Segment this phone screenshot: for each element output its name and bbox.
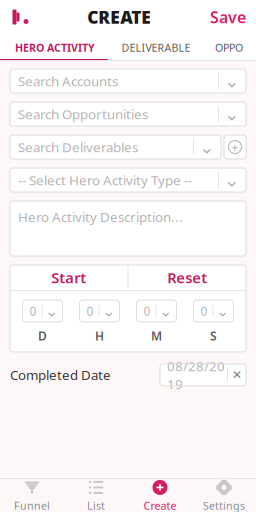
staticText: ⌄	[224, 70, 240, 92]
staticText: ⌄	[224, 103, 240, 125]
button[interactable]: Clear date	[228, 364, 246, 386]
staticText: Search Deliverables	[18, 138, 138, 156]
button[interactable]: Home	[0, 9, 28, 25]
staticText: DELIVERABLE	[121, 40, 190, 55]
staticText: ⌄	[45, 302, 58, 320]
staticText: 0	[143, 303, 150, 319]
staticText: D	[38, 328, 47, 344]
staticText: Settings	[203, 498, 245, 512]
staticText: Search Accounts	[18, 72, 118, 90]
staticText: 08/28/2019	[167, 357, 225, 393]
button[interactable]: DELIVERABLE	[110, 34, 202, 60]
staticText: 0	[29, 303, 36, 319]
staticText: H	[95, 328, 104, 344]
button[interactable]: Reset	[128, 265, 246, 290]
button[interactable]: -- Select Hero Activity Type --	[10, 168, 246, 192]
button[interactable]: Start	[10, 265, 127, 290]
staticText: List	[87, 498, 105, 512]
staticText: Reset	[167, 268, 207, 287]
staticText: Save	[210, 6, 246, 28]
button[interactable]: Hero Activity Description...	[10, 201, 246, 256]
button[interactable]: H value	[79, 300, 119, 322]
button[interactable]: Funnel	[0, 473, 64, 512]
button[interactable]: Search Deliverables	[10, 135, 221, 159]
staticText: M	[151, 328, 162, 344]
staticText: ⌄	[199, 136, 215, 158]
button[interactable]: OPPO	[202, 34, 256, 60]
staticText: Search Opportunities	[18, 105, 148, 123]
staticText: ⌄	[102, 302, 115, 320]
staticText: Start	[51, 268, 86, 287]
staticText: ⌄	[216, 302, 229, 320]
staticText: ✕	[232, 368, 242, 382]
staticText: CREATE	[87, 5, 151, 28]
staticText: +	[231, 138, 239, 156]
button[interactable]: List	[64, 473, 128, 512]
button[interactable]: HERO ACTIVITY	[0, 34, 110, 60]
button[interactable]: Add deliverable	[224, 135, 246, 159]
staticText: S	[210, 328, 217, 344]
staticText: HERO ACTIVITY	[15, 40, 95, 55]
staticText: -- Select Hero Activity Type --	[18, 171, 192, 189]
button[interactable]: Create	[128, 473, 192, 512]
staticText: OPPO	[215, 40, 243, 55]
button[interactable]: M value	[136, 300, 176, 322]
staticText: Completed Date	[10, 366, 111, 384]
button[interactable]: Search Opportunities	[10, 102, 246, 126]
staticText: Funnel	[14, 498, 50, 512]
staticText: ⌄	[159, 302, 172, 320]
staticText: Hero Activity Description...	[18, 208, 183, 226]
button[interactable]: S value	[193, 300, 233, 322]
button[interactable]: Save	[210, 6, 256, 28]
button[interactable]: Settings	[192, 473, 256, 512]
staticText: Create	[143, 498, 176, 512]
staticText: ⌄	[224, 169, 240, 191]
button[interactable]: D value	[22, 300, 62, 322]
button[interactable]: Search Accounts	[10, 69, 246, 93]
staticText: 0	[200, 303, 207, 319]
staticText: 0	[86, 303, 93, 319]
